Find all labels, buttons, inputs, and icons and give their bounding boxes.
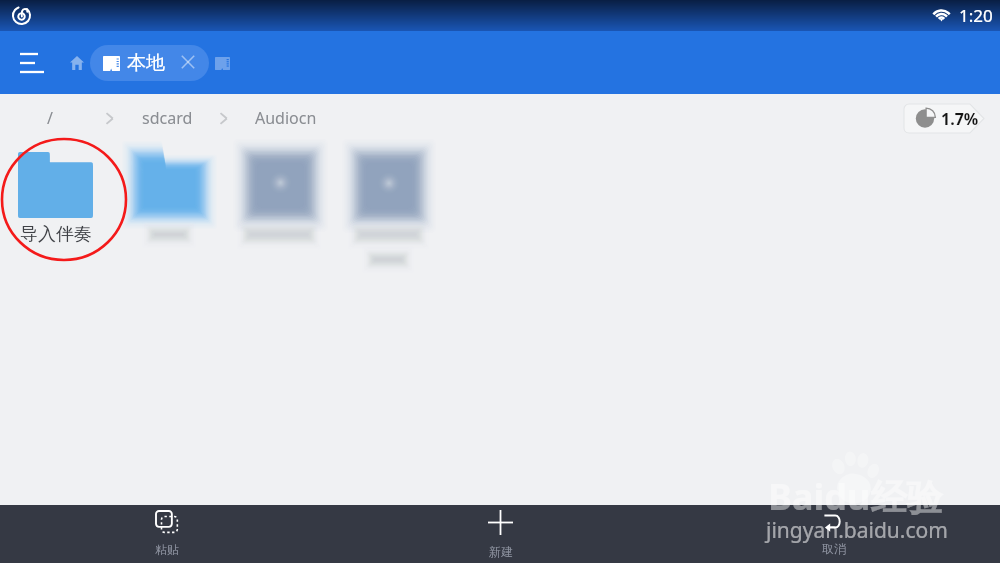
staticText: 本地	[127, 51, 165, 75]
staticText: 1:20	[959, 4, 993, 27]
staticText: 1.7%	[941, 108, 979, 130]
button[interactable]: 新建	[334, 505, 667, 563]
button[interactable]: sdcard	[132, 94, 203, 142]
button[interactable]: Other storage	[209, 50, 235, 76]
staticText: sdcard	[142, 107, 193, 129]
staticText: 导入伴奏	[20, 223, 92, 246]
staticText: Baidu经验	[768, 472, 943, 521]
button[interactable]	[342, 142, 442, 274]
staticText: jingyan.baidu.com	[766, 516, 948, 545]
button[interactable]: 1.7%	[904, 104, 985, 133]
staticText: 取消	[822, 541, 846, 556]
button[interactable]: 本地	[90, 45, 209, 81]
staticText: Audiocn	[255, 107, 317, 129]
button[interactable]: 导入伴奏	[18, 152, 93, 246]
button[interactable]: Audiocn	[245, 94, 327, 142]
button[interactable]	[230, 142, 330, 254]
button[interactable]: /	[37, 94, 63, 142]
staticText: 粘贴	[155, 542, 179, 557]
staticText: /	[47, 107, 53, 129]
button[interactable]: 粘贴	[0, 505, 334, 563]
button[interactable]: Home	[62, 48, 92, 78]
staticText: 新建	[489, 544, 513, 559]
button[interactable]: 取消	[667, 505, 1000, 563]
button[interactable]	[118, 142, 218, 254]
button[interactable]: Menu	[10, 41, 54, 85]
